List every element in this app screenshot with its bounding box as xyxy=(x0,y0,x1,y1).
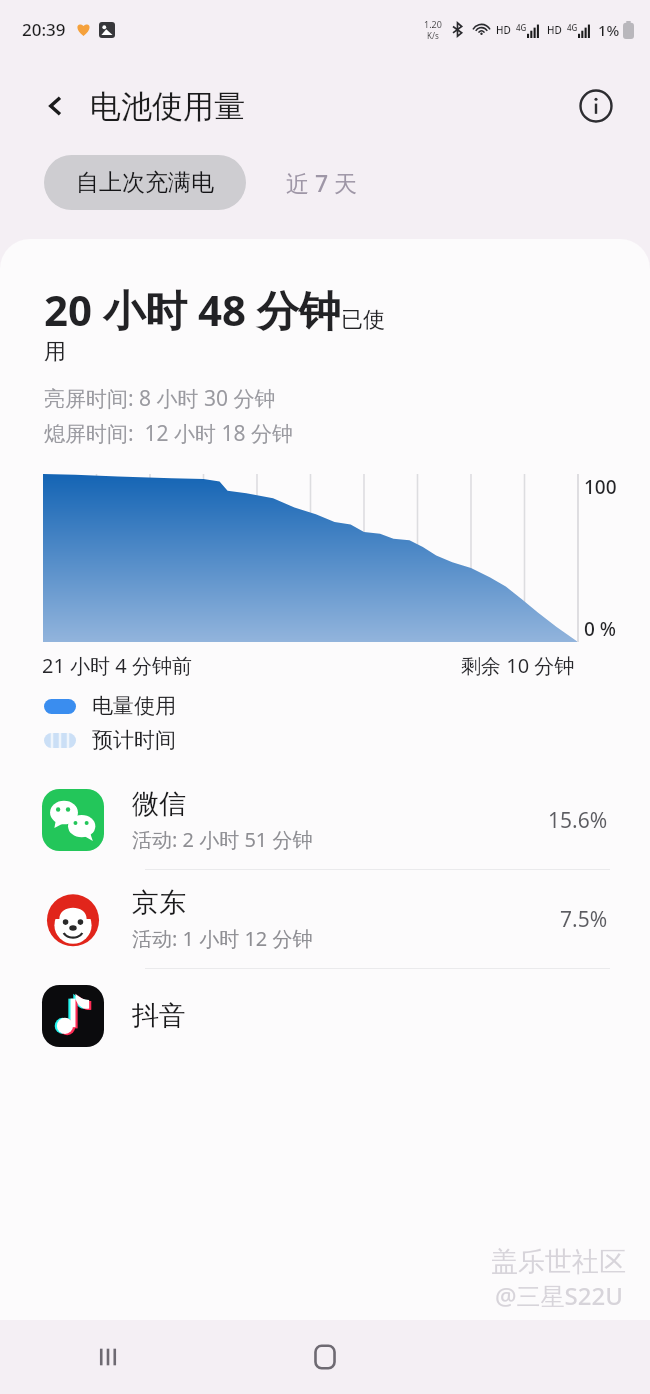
staticText: 剩余 10 分钟 xyxy=(461,652,575,679)
staticText: 已使 xyxy=(341,306,385,334)
staticText: 0 % xyxy=(584,616,616,642)
staticText: 4G xyxy=(516,22,527,33)
staticText: 21 小时 4 分钟前 xyxy=(42,652,192,679)
staticText: 4G xyxy=(567,22,578,33)
staticText: HD xyxy=(496,23,511,37)
button[interactable]: Recent apps xyxy=(0,1320,216,1394)
staticText: 自上次充满电 xyxy=(76,168,214,197)
staticText: 7.5% xyxy=(560,905,608,934)
staticText: 亮屏时间: 8 小时 30 分钟 xyxy=(44,384,276,413)
button[interactable]: Home xyxy=(216,1320,433,1394)
staticText: 活动: 1 小时 12 分钟 xyxy=(132,925,313,952)
staticText: 15.6% xyxy=(548,806,608,835)
button[interactable]: Information xyxy=(572,82,620,130)
staticText: 熄屏时间: 12 小时 18 分钟 xyxy=(44,419,293,448)
staticText: 盖乐世社区 xyxy=(491,1245,626,1279)
staticText: 用 xyxy=(44,338,66,366)
staticText: 电量使用 xyxy=(92,693,176,719)
button[interactable]: 京东 xyxy=(0,870,650,968)
staticText: 近 7 天 xyxy=(286,167,358,198)
button[interactable]: 抖音 xyxy=(0,969,650,1063)
staticText: 1.20 xyxy=(424,18,442,30)
staticText: HD xyxy=(547,23,562,37)
button[interactable]: Back xyxy=(34,84,78,128)
staticText: 预计时间 xyxy=(92,727,176,753)
staticText: 100 xyxy=(584,474,617,500)
staticText: 抖音 xyxy=(132,999,186,1033)
staticText: 电池使用量 xyxy=(90,87,245,126)
staticText: 1% xyxy=(598,20,620,40)
staticText: 京东 xyxy=(132,886,186,920)
staticText: K/s xyxy=(427,30,439,41)
button[interactable]: 近 7 天 xyxy=(246,154,398,211)
staticText: 微信 xyxy=(132,787,186,821)
button[interactable]: 微信 xyxy=(0,771,650,869)
staticText: 活动: 2 小时 51 分钟 xyxy=(132,826,313,853)
staticText: 20:39 xyxy=(22,18,66,41)
staticText: 20 小时 48 分钟 xyxy=(44,281,341,338)
button[interactable]: 自上次充满电 xyxy=(44,155,246,210)
staticText: @三星S22U xyxy=(495,1279,623,1312)
